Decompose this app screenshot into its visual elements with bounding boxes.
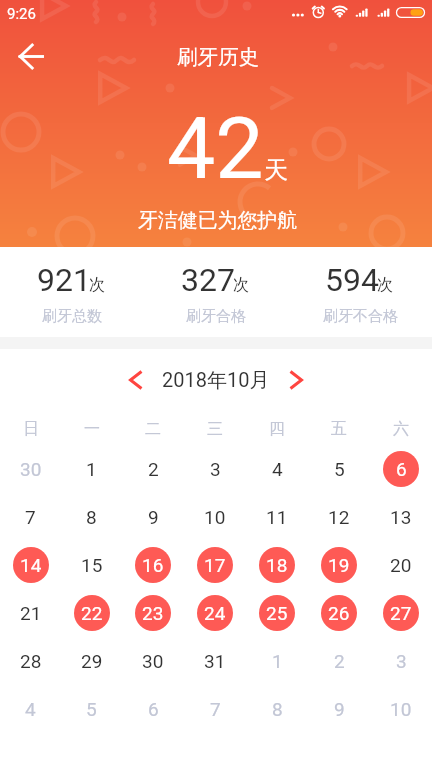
button[interactable]: 2: [308, 637, 370, 685]
staticText: 22: [81, 602, 103, 624]
button[interactable]: 14: [0, 541, 61, 589]
staticText: 17: [204, 554, 226, 576]
staticText: 27: [390, 602, 412, 624]
staticText: 10: [204, 506, 226, 528]
button[interactable]: 10: [184, 493, 246, 541]
button[interactable]: 3: [370, 637, 432, 685]
staticText: 1: [86, 458, 97, 480]
staticText: 9:26: [7, 5, 36, 23]
staticText: 14: [20, 554, 42, 576]
staticText: 18: [266, 554, 288, 576]
button[interactable]: 1: [246, 637, 308, 685]
button[interactable]: 9: [122, 493, 184, 541]
button[interactable]: 15: [61, 541, 122, 589]
button[interactable]: 6: [122, 685, 184, 733]
staticText: 16: [142, 554, 164, 576]
staticText: 2: [148, 458, 159, 480]
staticText: 次: [233, 275, 249, 295]
staticText: 12: [328, 506, 350, 528]
button[interactable]: 30: [0, 445, 61, 493]
button[interactable]: 5: [61, 685, 122, 733]
staticText: 28: [20, 650, 42, 672]
staticText: 刷牙合格: [186, 307, 246, 326]
staticText: 3: [210, 458, 221, 480]
staticText: 日: [23, 419, 39, 439]
button[interactable]: 7: [184, 685, 246, 733]
button[interactable]: 24: [184, 589, 246, 637]
staticText: 19: [328, 554, 350, 576]
button[interactable]: Next month: [280, 364, 312, 396]
staticText: 一: [84, 419, 100, 439]
staticText: 921: [37, 261, 91, 299]
staticText: 11: [266, 506, 288, 528]
button[interactable]: 1: [61, 445, 122, 493]
staticText: 刷牙不合格: [323, 307, 398, 326]
button[interactable]: 17: [184, 541, 246, 589]
staticText: 327: [181, 261, 235, 299]
staticText: 7: [25, 506, 36, 528]
button[interactable]: 22: [61, 589, 122, 637]
staticText: 5: [334, 458, 345, 480]
button[interactable]: 11: [246, 493, 308, 541]
button[interactable]: 20: [370, 541, 432, 589]
staticText: 31: [204, 650, 226, 672]
staticText: 21: [20, 602, 42, 624]
button[interactable]: 23: [122, 589, 184, 637]
button[interactable]: 5: [308, 445, 370, 493]
staticText: 9: [148, 506, 159, 528]
button[interactable]: 4: [246, 445, 308, 493]
button[interactable]: 8: [61, 493, 122, 541]
button[interactable]: 27: [370, 589, 432, 637]
button[interactable]: 2: [122, 445, 184, 493]
button[interactable]: 19: [308, 541, 370, 589]
staticText: 23: [142, 602, 164, 624]
staticText: 25: [266, 602, 288, 624]
staticText: 29: [81, 650, 103, 672]
staticText: 次: [377, 275, 393, 295]
button[interactable]: 13: [370, 493, 432, 541]
button[interactable]: Previous month: [120, 364, 152, 396]
staticText: 刷牙历史: [177, 44, 259, 70]
button[interactable]: 29: [61, 637, 122, 685]
staticText: 7: [210, 698, 221, 720]
button[interactable]: 9: [308, 685, 370, 733]
staticText: 牙洁健已为您护航: [138, 208, 298, 233]
staticText: 5: [86, 698, 97, 720]
staticText: 26: [328, 602, 350, 624]
staticText: 13: [390, 506, 412, 528]
staticText: 9: [334, 698, 345, 720]
button[interactable]: 28: [0, 637, 61, 685]
button[interactable]: 6: [370, 445, 432, 493]
button[interactable]: 8: [246, 685, 308, 733]
button[interactable]: 31: [184, 637, 246, 685]
staticText: 二: [145, 419, 161, 439]
button[interactable]: 25: [246, 589, 308, 637]
button[interactable]: Back: [13, 38, 49, 74]
button[interactable]: 10: [370, 685, 432, 733]
button[interactable]: 327: [144, 247, 288, 326]
button[interactable]: 18: [246, 541, 308, 589]
staticText: 10: [390, 698, 412, 720]
staticText: 刷牙总数: [42, 307, 102, 326]
button[interactable]: 26: [308, 589, 370, 637]
button[interactable]: 21: [0, 589, 61, 637]
staticText: 3: [396, 650, 407, 672]
button[interactable]: 7: [0, 493, 61, 541]
staticText: 6: [396, 458, 407, 480]
staticText: 2018年10月: [162, 368, 270, 393]
button[interactable]: 12: [308, 493, 370, 541]
button[interactable]: 4: [0, 685, 61, 733]
button[interactable]: 594: [288, 247, 432, 326]
staticText: 24: [204, 602, 226, 624]
staticText: 4: [272, 458, 283, 480]
staticText: 42: [167, 98, 264, 199]
staticText: 1: [272, 650, 283, 672]
staticText: 15: [81, 554, 103, 576]
button[interactable]: 30: [122, 637, 184, 685]
button[interactable]: 921: [0, 247, 144, 326]
staticText: 8: [86, 506, 97, 528]
staticText: 三: [207, 419, 223, 439]
staticText: 6: [148, 698, 159, 720]
button[interactable]: 16: [122, 541, 184, 589]
button[interactable]: 3: [184, 445, 246, 493]
